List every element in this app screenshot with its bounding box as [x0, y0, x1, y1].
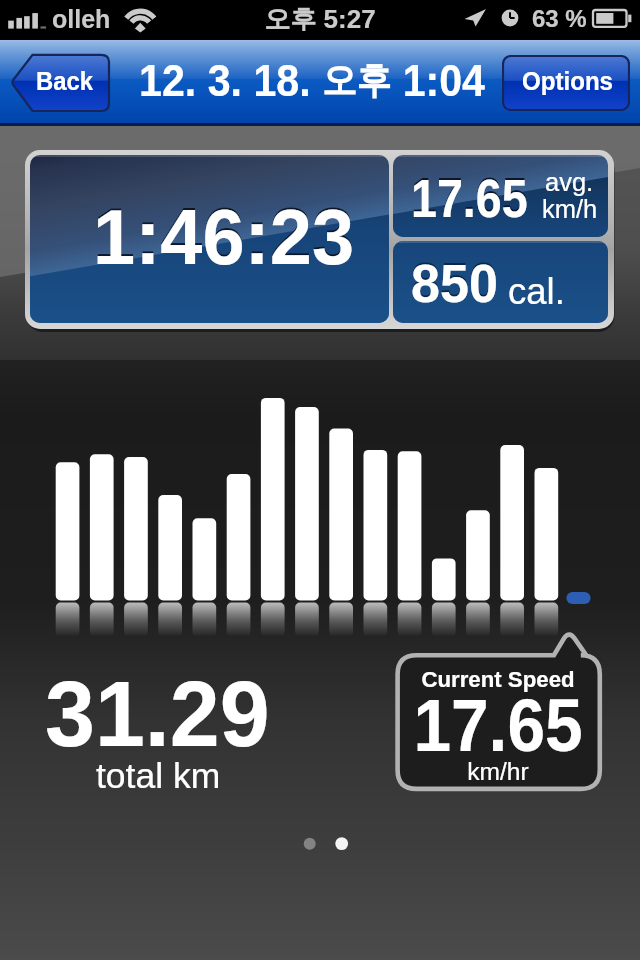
staticText: Back — [36, 67, 93, 95]
staticText: 850 — [411, 253, 498, 314]
staticText: Current Speed — [399, 666, 596, 691]
button[interactable]: Current speed 17.65 km/hr — [394, 629, 604, 795]
staticText: olleh — [52, 5, 111, 33]
staticText: 오후 5:27 — [0, 3, 640, 36]
staticText: cal. — [508, 271, 565, 312]
button[interactable] — [502, 55, 630, 111]
staticText: km/hr — [397, 758, 599, 785]
staticText: 12. 3. 18. 오후 1:04 — [13, 56, 611, 105]
staticText: 1:46:23 — [93, 191, 354, 279]
staticText: 17.65 — [411, 168, 528, 229]
staticText: km/h — [542, 195, 598, 223]
staticText: Options — [522, 67, 614, 95]
staticText: 17.65 — [411, 166, 528, 227]
staticText: 850 — [411, 251, 498, 312]
staticText: 17.65 — [406, 684, 590, 767]
staticText: avg. — [545, 168, 594, 196]
staticText: total km — [96, 756, 221, 796]
staticText: 1:46:23 — [93, 193, 354, 281]
staticText: 63 % — [532, 5, 587, 32]
button[interactable] — [11, 54, 110, 112]
staticText: 31.29 — [45, 661, 270, 765]
